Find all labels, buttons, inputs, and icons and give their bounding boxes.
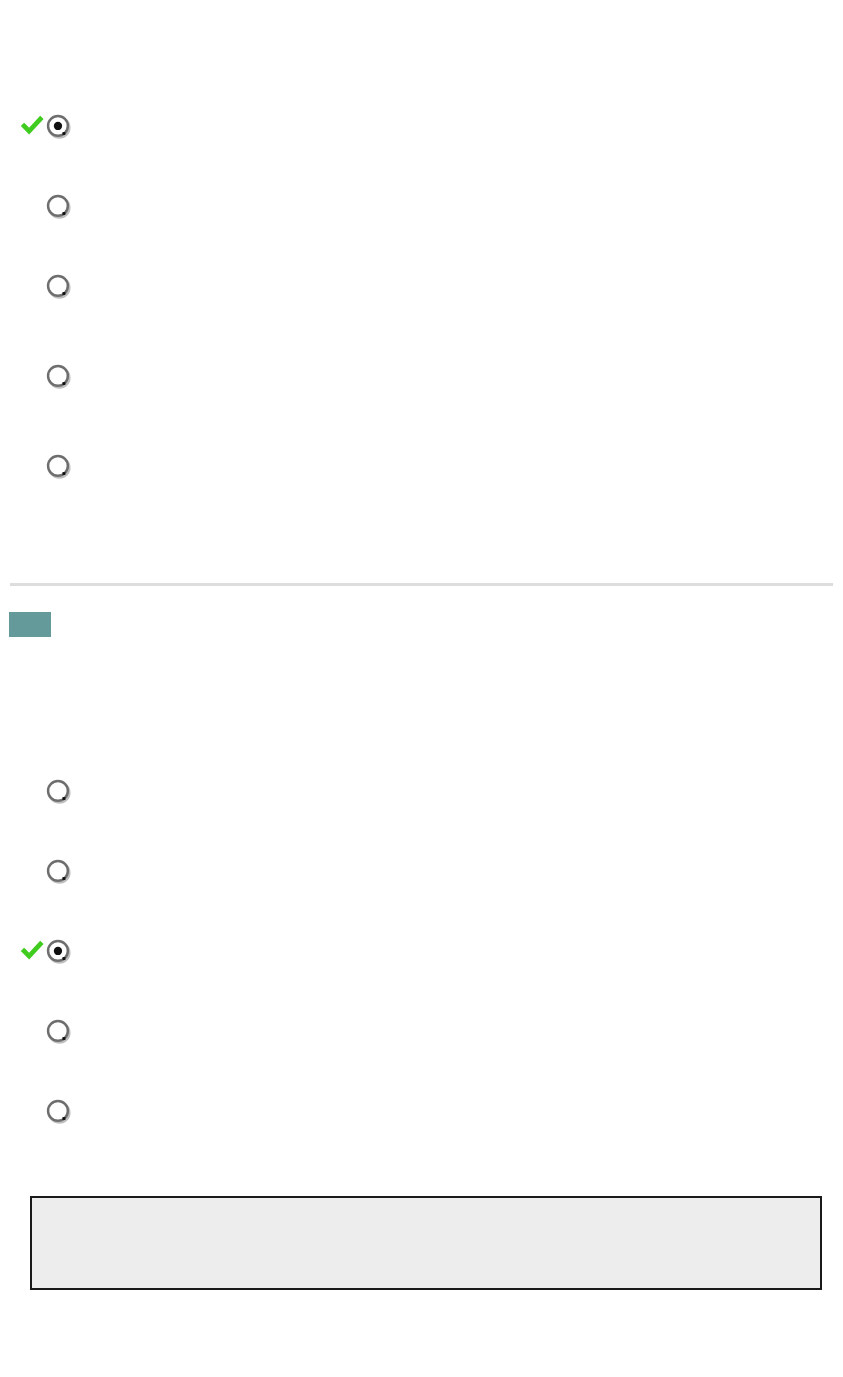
button[interactable]: Option 1, selected (0, 114, 843, 140)
button[interactable]: Option 3, selected (0, 939, 843, 965)
button[interactable]: Option 2 (0, 194, 843, 220)
button[interactable]: Option 5 (0, 1099, 843, 1125)
button[interactable]: Option 4 (0, 1019, 843, 1045)
button[interactable]: Option 1 (0, 779, 843, 805)
button[interactable]: Option 4 (0, 364, 843, 390)
button[interactable]: Option 2 (0, 859, 843, 885)
button[interactable]: Option 3 (0, 274, 843, 300)
button[interactable]: Explanation panel (30, 1196, 822, 1290)
button[interactable]: Option 5 (0, 454, 843, 480)
